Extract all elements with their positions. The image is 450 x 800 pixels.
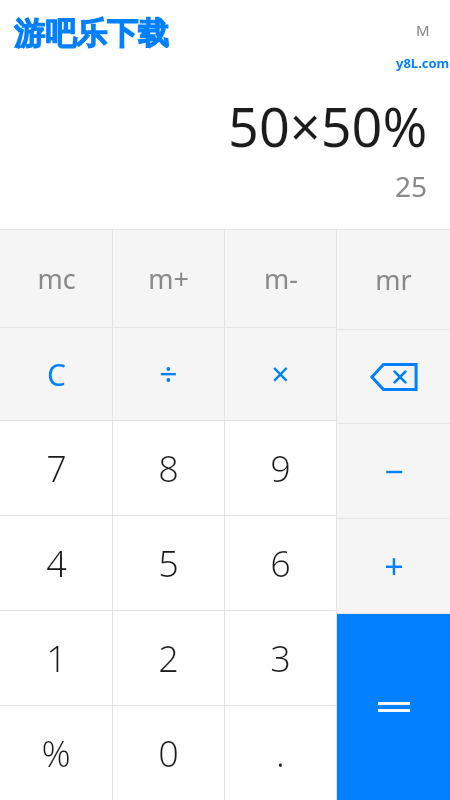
button[interactable]: 8	[113, 421, 224, 515]
staticText: +	[384, 543, 404, 589]
button[interactable]: 9	[225, 421, 336, 515]
staticText: 5	[158, 539, 179, 588]
staticText: −	[384, 448, 404, 494]
staticText: mr	[375, 261, 412, 298]
button[interactable]: −	[337, 424, 450, 518]
button[interactable]: 6	[225, 516, 336, 610]
staticText: mc	[37, 260, 76, 297]
button[interactable]: +	[337, 519, 450, 613]
staticText: 6	[270, 539, 291, 588]
staticText: y8L.com	[396, 54, 450, 72]
button[interactable]: 5	[113, 516, 224, 610]
button[interactable]: Equals	[337, 614, 450, 800]
staticText: 3	[270, 634, 291, 683]
staticText: ÷	[159, 352, 178, 396]
button[interactable]: 2	[113, 611, 224, 705]
staticText: %	[41, 729, 71, 778]
button[interactable]: .	[225, 706, 336, 800]
button[interactable]: 4	[0, 516, 112, 610]
staticText: 1	[46, 634, 67, 683]
button[interactable]: ×	[225, 328, 336, 420]
staticText: 2	[158, 634, 179, 683]
staticText: 50×50%	[228, 89, 428, 163]
staticText: 8	[158, 444, 179, 493]
button[interactable]: mr	[337, 230, 450, 329]
button[interactable]: 1	[0, 611, 112, 705]
staticText: 0	[158, 729, 179, 778]
staticText: 9	[270, 444, 291, 493]
staticText: 游吧乐下载	[14, 14, 169, 53]
staticText: 25	[395, 167, 428, 205]
button[interactable]: %	[0, 706, 112, 800]
staticText: 7	[46, 444, 67, 493]
staticText: C	[47, 354, 66, 395]
staticText: m-	[264, 260, 298, 297]
staticText: .	[276, 729, 285, 778]
button[interactable]: Backspace	[337, 330, 450, 423]
button[interactable]: 3	[225, 611, 336, 705]
button[interactable]: mc	[0, 230, 112, 327]
button[interactable]: 7	[0, 421, 112, 515]
staticText: ×	[271, 352, 290, 396]
button[interactable]: ÷	[113, 328, 224, 420]
staticText: m+	[148, 260, 189, 297]
button[interactable]: 0	[113, 706, 224, 800]
button[interactable]: m+	[113, 230, 224, 327]
staticText: M	[416, 20, 430, 40]
button[interactable]: C	[0, 328, 112, 420]
staticText: 4	[46, 539, 67, 588]
button[interactable]: m-	[225, 230, 336, 327]
